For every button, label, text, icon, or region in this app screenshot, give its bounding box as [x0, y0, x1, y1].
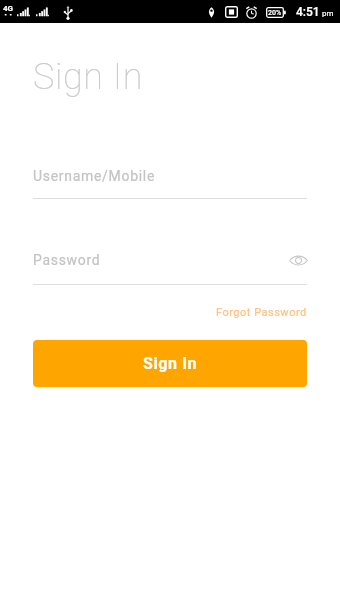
staticText: Password — [33, 252, 101, 268]
staticText: Sign In — [33, 56, 144, 98]
staticText: pm — [322, 9, 334, 18]
button[interactable]: Sign In — [33, 340, 307, 387]
button[interactable]: Password — [33, 248, 307, 285]
staticText: 4G — [3, 4, 14, 13]
staticText: Username/Mobile — [33, 168, 156, 184]
button[interactable]: Show password — [285, 250, 311, 270]
staticText: 4:51 — [296, 5, 320, 19]
staticText: Sign In — [143, 354, 197, 373]
button[interactable]: Username/Mobile — [33, 164, 307, 199]
staticText: 20% — [268, 9, 282, 17]
staticText: Forgot Password — [216, 306, 307, 319]
button[interactable]: Forgot Password — [214, 304, 309, 321]
